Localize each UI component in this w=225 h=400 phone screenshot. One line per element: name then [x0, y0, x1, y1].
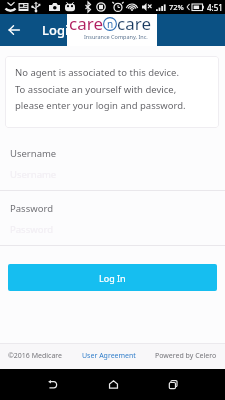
staticText: Username: [10, 147, 57, 160]
staticText: Login: [42, 21, 77, 39]
staticText: Username: [10, 168, 57, 181]
button[interactable]: Username: [0, 146, 225, 191]
button[interactable]: Recents: [161, 369, 185, 400]
staticText: Password: [10, 202, 53, 215]
staticText: ©2016 Medicare: [8, 351, 63, 361]
button[interactable]: User Agreement: [82, 351, 136, 361]
staticText: 4:51: [207, 2, 223, 13]
staticText: Powered by Celero: [155, 351, 217, 361]
button[interactable]: Back: [0, 16, 28, 44]
staticText: Insurance Company, Inc.: [84, 33, 148, 40]
staticText: Password: [10, 223, 53, 236]
staticText: 72%: [169, 2, 184, 12]
button[interactable]: Password: [0, 201, 225, 246]
staticText: Log In: [99, 272, 126, 284]
staticText: User Agreement: [82, 351, 136, 361]
button[interactable]: Back: [40, 369, 64, 400]
button[interactable]: Home: [101, 369, 125, 400]
staticText: n: [107, 17, 114, 31]
staticText: care: [69, 12, 103, 35]
button[interactable]: Log In: [8, 264, 217, 291]
staticText: No agent is associated to this device. T…: [15, 66, 186, 111]
staticText: care: [117, 12, 151, 35]
